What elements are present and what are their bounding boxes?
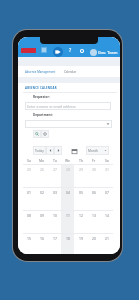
staticText: 06 (92, 190, 96, 195)
button[interactable]: Inbox (53, 47, 63, 57)
staticText: Month (88, 149, 98, 153)
button[interactable]: 10 (48, 211, 61, 233)
button[interactable]: 18 (61, 234, 74, 254)
button[interactable]: Previous (46, 146, 54, 155)
staticText: Requestor: (33, 95, 50, 99)
staticText: 18 (66, 236, 70, 241)
button[interactable]: Calendar view (71, 148, 77, 154)
button[interactable]: 07 (100, 188, 113, 210)
button[interactable]: Absence Management (24, 68, 57, 76)
button[interactable]: 26 (35, 165, 48, 187)
button[interactable]: 06 (87, 188, 100, 210)
staticText: 25 (27, 167, 31, 172)
button[interactable]: 20 (87, 234, 100, 254)
staticText: 16 (40, 236, 44, 241)
staticText: 13 (92, 213, 96, 218)
staticText: Absence Management (25, 70, 56, 74)
staticText: 11 (66, 213, 70, 218)
button[interactable]: 12 (74, 211, 87, 233)
button[interactable]: Menu (41, 47, 47, 53)
button[interactable]: Next (54, 146, 62, 155)
staticText: ? (69, 47, 72, 52)
staticText: 01 (27, 190, 31, 195)
staticText: 29 (79, 167, 83, 172)
button[interactable]: 05 (74, 188, 87, 210)
staticText: 28 (66, 167, 70, 172)
staticText: 17 (53, 236, 57, 241)
staticText: Fr (92, 158, 96, 163)
staticText: Th (79, 158, 83, 163)
button[interactable]: 30 (87, 165, 100, 187)
button[interactable]: 03 (48, 188, 61, 210)
staticText: 26 (40, 167, 44, 172)
staticText: Mo (39, 158, 45, 163)
staticText: Gov. Team (98, 50, 118, 55)
staticText: 15 (27, 236, 31, 241)
staticText: 21 (105, 236, 109, 241)
button[interactable]: 28 (61, 165, 74, 187)
button[interactable]: 17 (48, 234, 61, 254)
button[interactable]: Month (86, 146, 109, 155)
staticText: Today (35, 149, 44, 153)
button[interactable]: 11 (61, 211, 74, 233)
staticText: Department: (33, 113, 53, 117)
button[interactable]: 09 (35, 211, 48, 233)
staticText: Tu (53, 158, 57, 163)
staticText: 31 (105, 167, 109, 172)
button[interactable]: 29 (74, 165, 87, 187)
staticText: 27 (53, 167, 57, 172)
staticText: 10 (53, 213, 57, 218)
button[interactable]: Enter a name or email address (25, 102, 111, 110)
staticText: 05 (79, 190, 83, 195)
button[interactable]: Help (68, 47, 73, 52)
button[interactable]: Refresh (41, 130, 49, 138)
button[interactable]: 08 (23, 211, 35, 233)
button[interactable]: Settings (79, 48, 84, 53)
staticText: 08 (27, 213, 31, 218)
staticText: Sa (105, 158, 109, 163)
staticText: Su (27, 158, 31, 163)
staticText: ABSENCE CALENDAR (25, 86, 57, 90)
button[interactable]: 21 (100, 234, 113, 254)
button[interactable]: 15 (23, 234, 35, 254)
button[interactable]: 16 (35, 234, 48, 254)
button[interactable]: 25 (23, 165, 35, 187)
button[interactable]: Workday (21, 48, 36, 53)
staticText: Calendar (64, 70, 77, 74)
button[interactable]: 27 (48, 165, 61, 187)
staticText: 03 (53, 190, 57, 195)
button[interactable]: 13 (87, 211, 100, 233)
staticText: We (65, 158, 70, 163)
button[interactable] (25, 120, 112, 128)
button[interactable]: Gov. Team (90, 47, 118, 57)
staticText: Enter a name or email address (27, 104, 76, 109)
staticText: 30 (92, 167, 96, 172)
staticText: 04 (66, 190, 70, 195)
button[interactable]: Search (33, 130, 41, 138)
button[interactable]: 04 (61, 188, 74, 210)
button[interactable]: 31 (100, 165, 113, 187)
staticText: 14 (105, 213, 109, 218)
staticText: 02 (40, 190, 44, 195)
button[interactable]: 01 (23, 188, 35, 210)
button[interactable]: 19 (74, 234, 87, 254)
staticText: 12 (79, 213, 83, 218)
button[interactable]: 14 (100, 211, 113, 233)
button[interactable]: Today (33, 146, 46, 155)
button[interactable]: 02 (35, 188, 48, 210)
button[interactable]: Calendar (63, 68, 78, 76)
staticText: 20 (92, 236, 96, 241)
staticText: 09 (40, 213, 44, 218)
staticText: 07 (105, 190, 109, 195)
staticText: 19 (79, 236, 83, 241)
